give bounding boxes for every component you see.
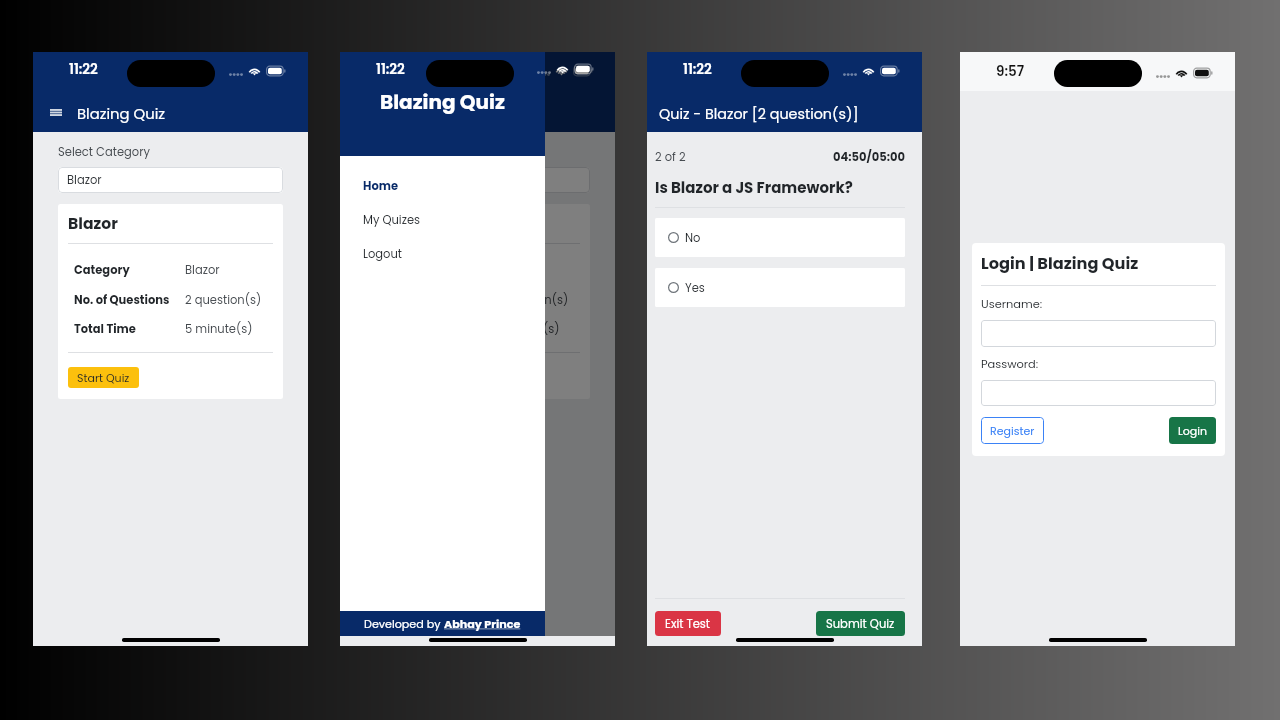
button[interactable]: Register xyxy=(981,417,1044,444)
staticText: Abhay Prince xyxy=(444,616,521,632)
staticText: 11:22 xyxy=(376,60,405,79)
staticText: 9:57 xyxy=(996,62,1025,81)
button[interactable]: Blazor xyxy=(365,167,590,193)
staticText: 2 of 2 xyxy=(655,149,686,165)
staticText: Submit Quiz xyxy=(826,616,895,632)
staticText: Password: xyxy=(981,356,1039,372)
button[interactable]: No xyxy=(655,218,905,257)
button[interactable]: Yes xyxy=(655,268,905,307)
staticText: Blazor xyxy=(375,213,425,235)
button[interactable]: Open navigation menu xyxy=(44,100,68,124)
button[interactable]: Submit Quiz xyxy=(816,611,905,636)
button[interactable] xyxy=(981,380,1216,406)
staticText: Blazing Quiz xyxy=(384,103,473,124)
staticText: Yes xyxy=(685,280,705,296)
staticText: Exit Test xyxy=(665,616,711,632)
staticText: Username: xyxy=(981,296,1043,312)
staticText: 11:22 xyxy=(683,60,712,79)
staticText: Blazor xyxy=(67,172,102,188)
staticText: Blazing Quiz xyxy=(380,88,505,116)
staticText: 2 question(s) xyxy=(185,292,262,308)
button[interactable] xyxy=(981,320,1216,347)
staticText: 11:22 xyxy=(69,60,98,79)
staticText: Login | Blazing Quiz xyxy=(981,252,1139,275)
staticText: Select Category xyxy=(58,144,150,160)
staticText: Start Quiz xyxy=(77,370,130,385)
staticText: 5 minute(s) xyxy=(185,321,253,337)
staticText: Blazor xyxy=(374,172,409,188)
button[interactable]: Start Quiz xyxy=(68,367,139,388)
staticText: No xyxy=(685,230,701,246)
button[interactable]: My Quizes xyxy=(363,212,545,228)
button[interactable]: Home xyxy=(363,178,545,194)
staticText: Blazing Quiz xyxy=(77,103,166,124)
staticText: Home xyxy=(363,178,398,194)
staticText: 2 question(s) xyxy=(492,292,569,308)
staticText: No. of Questions xyxy=(74,292,170,308)
staticText: My Quizes xyxy=(363,212,421,228)
staticText: 5 minute(s) xyxy=(492,321,560,337)
staticText: 11:22 xyxy=(376,60,405,79)
button[interactable]: Logout xyxy=(363,246,545,262)
staticText: Blazor xyxy=(185,262,220,278)
staticText: 04:50/05:00 xyxy=(833,149,905,165)
staticText: Register xyxy=(990,423,1035,438)
button[interactable]: Login xyxy=(1169,417,1216,444)
staticText: Is Blazor a JS Framework? xyxy=(655,177,853,198)
button[interactable]: Exit Test xyxy=(655,611,721,636)
staticText: Blazor xyxy=(68,213,118,235)
staticText: Select Category xyxy=(365,144,457,160)
staticText: Quiz - Blazor [2 question(s)] xyxy=(659,104,859,124)
staticText: Logout xyxy=(363,246,403,262)
button[interactable]: Blazor xyxy=(58,167,283,193)
staticText: Developed by xyxy=(364,616,444,632)
staticText: Category xyxy=(74,262,130,278)
staticText: Login xyxy=(1178,423,1207,438)
staticText: Total Time xyxy=(74,321,136,337)
